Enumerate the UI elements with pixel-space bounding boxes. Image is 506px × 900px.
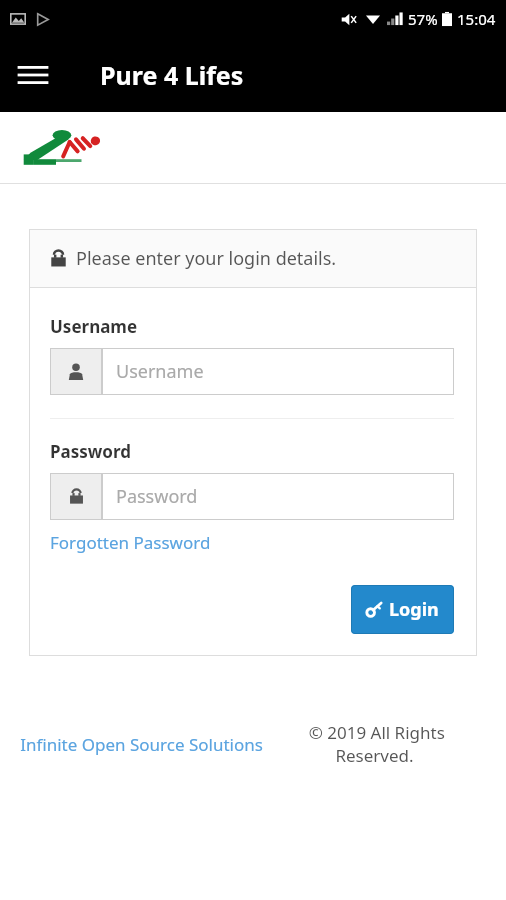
staticText: Infinite Open Source Solutions	[20, 733, 263, 756]
staticText: Password	[50, 440, 131, 463]
staticText: Username	[50, 315, 138, 338]
button[interactable]: Infinite Open Source Solutions	[20, 733, 263, 756]
staticText: Forgotten Password	[50, 531, 211, 554]
staticText: Login	[389, 597, 439, 622]
staticText: Please enter your login details.	[76, 246, 337, 271]
button[interactable]: Username	[50, 348, 454, 395]
staticText: Password	[116, 484, 198, 509]
staticText: © 2019 All Rights Reserved.	[263, 721, 486, 767]
button[interactable]: Open navigation menu	[10, 52, 56, 98]
staticText: 57%	[408, 9, 438, 29]
staticText: Username	[116, 359, 204, 384]
staticText: 15:04	[457, 9, 496, 29]
button[interactable]: Password	[50, 473, 454, 520]
button[interactable]: Login	[351, 585, 454, 634]
staticText: Pure 4 Lifes	[100, 58, 244, 92]
button[interactable]: Forgotten Password	[50, 531, 211, 554]
